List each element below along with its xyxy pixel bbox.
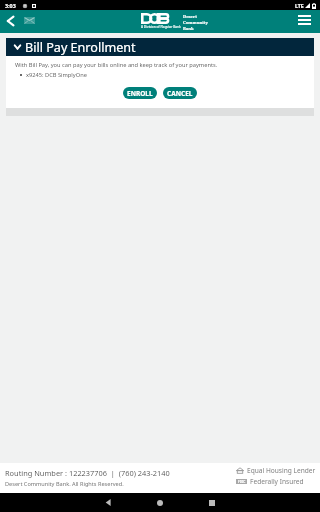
staticText: Bank bbox=[183, 26, 194, 32]
staticText: Desert bbox=[183, 14, 197, 20]
staticText: Routing Number : 122237706 | (760) 243-2… bbox=[5, 468, 170, 478]
staticText: Community bbox=[183, 20, 208, 26]
staticText: x9245: DCB SimplyOne bbox=[26, 71, 87, 79]
staticText: Desert Community Bank. All Rights Reserv… bbox=[5, 480, 124, 488]
button[interactable]: Menu bbox=[296, 12, 312, 28]
staticText: Equal Housing Lender bbox=[247, 466, 316, 475]
staticText: CANCEL bbox=[167, 89, 193, 98]
staticText: Bill Pay Enrollment bbox=[25, 39, 136, 56]
button[interactable]: Bill Pay Enrollment bbox=[6, 38, 314, 56]
button[interactable]: Back bbox=[1, 12, 19, 30]
staticText: A Division of Flagstar Bank bbox=[141, 25, 181, 29]
staticText: With Bill Pay, you can pay your bills on… bbox=[15, 61, 218, 69]
staticText: FDIC bbox=[238, 480, 246, 484]
button[interactable]: CANCEL bbox=[163, 87, 197, 99]
staticText: 3:03 bbox=[5, 2, 16, 9]
staticText: ENROLL bbox=[127, 89, 153, 98]
button[interactable]: Messages bbox=[22, 14, 36, 27]
button[interactable]: ENROLL bbox=[123, 87, 157, 99]
staticText: Federally Insured bbox=[250, 477, 304, 486]
staticText: LTE bbox=[295, 2, 304, 9]
